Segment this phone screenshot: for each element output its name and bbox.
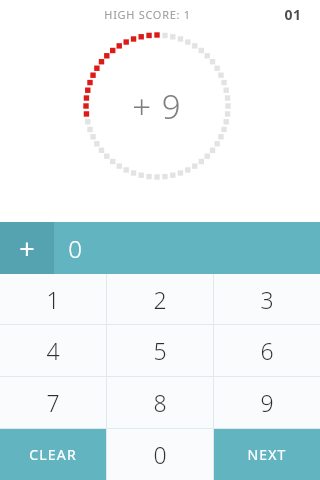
button[interactable]: 3 bbox=[214, 274, 320, 324]
button[interactable]: 2 bbox=[107, 274, 213, 324]
staticText: 6 bbox=[260, 335, 274, 366]
staticText: 01 bbox=[284, 5, 302, 24]
staticText: 4 bbox=[46, 335, 60, 366]
button[interactable]: 7 bbox=[0, 377, 106, 428]
button[interactable]: CLEAR bbox=[0, 429, 106, 480]
staticText: 2 bbox=[153, 284, 167, 315]
button[interactable]: 8 bbox=[107, 377, 213, 428]
staticText: + 9 bbox=[132, 84, 182, 129]
staticText: 0 bbox=[68, 232, 82, 265]
staticText: 3 bbox=[260, 284, 274, 315]
staticText: 8 bbox=[153, 387, 167, 418]
staticText: 0 bbox=[153, 439, 167, 470]
staticText: NEXT bbox=[247, 445, 287, 464]
button[interactable]: 4 bbox=[0, 325, 106, 376]
button[interactable]: 1 bbox=[0, 274, 106, 324]
staticText: 9 bbox=[260, 387, 274, 418]
button[interactable]: 9 bbox=[214, 377, 320, 428]
button[interactable]: 0 bbox=[54, 222, 320, 274]
staticText: 1 bbox=[46, 284, 60, 315]
staticText: 5 bbox=[153, 335, 167, 366]
staticText: HIGH SCORE: 1 bbox=[104, 7, 191, 22]
staticText: 7 bbox=[46, 387, 60, 418]
button[interactable]: Add number bbox=[0, 222, 54, 274]
button[interactable]: NEXT bbox=[214, 429, 320, 480]
staticText: CLEAR bbox=[29, 445, 77, 464]
button[interactable]: 0 bbox=[107, 429, 213, 480]
button[interactable]: 5 bbox=[107, 325, 213, 376]
staticText: + bbox=[19, 230, 35, 267]
button[interactable]: 6 bbox=[214, 325, 320, 376]
